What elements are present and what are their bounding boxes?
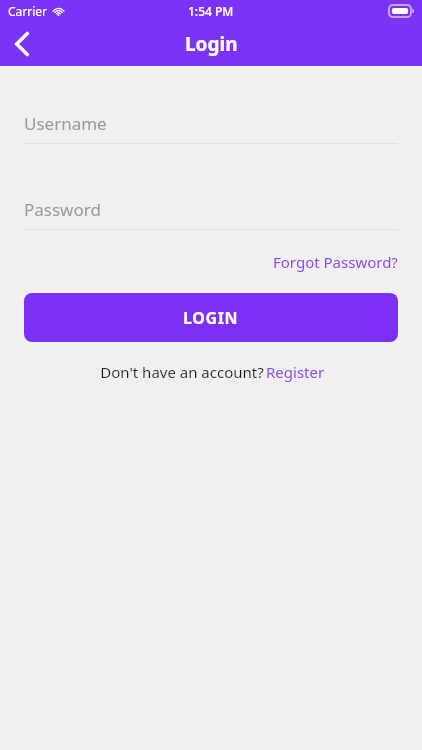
button[interactable]: Back [0,22,44,66]
staticText: Password [24,198,101,221]
staticText: Carrier [8,3,48,19]
staticText: Login [185,31,238,57]
staticText: 1:54 PM [188,3,234,19]
button[interactable]: Register [266,362,325,382]
button[interactable]: Forgot Password? [273,252,398,272]
staticText: LOGIN [183,307,239,329]
staticText: Forgot Password? [273,252,398,272]
button[interactable]: Username [24,110,398,144]
staticText: Don't have an account? [98,362,266,382]
staticText: Register [266,362,325,382]
button[interactable]: Password [24,196,398,230]
staticText: Username [24,112,107,135]
button[interactable]: LOGIN [24,293,398,342]
